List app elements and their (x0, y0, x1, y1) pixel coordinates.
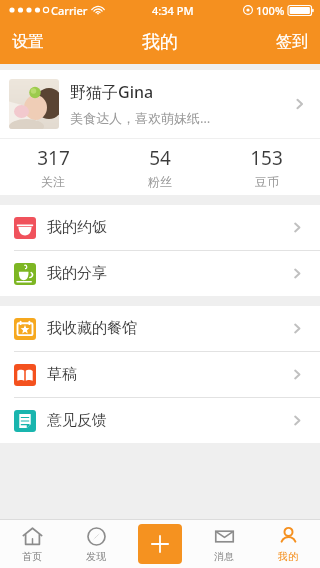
button[interactable]: Add (138, 524, 182, 564)
staticText: 美食达人，喜欢萌妹纸… (70, 109, 211, 127)
staticText: 4:34 PM (152, 3, 194, 18)
button[interactable]: 317 (0, 145, 106, 189)
staticText: 发现 (86, 550, 106, 563)
staticText: 豆币 (255, 174, 279, 189)
button[interactable]: 153 (213, 145, 320, 189)
button[interactable]: 我的 (256, 525, 320, 563)
staticText: 我的分享 (47, 264, 107, 283)
staticText: 草稿 (47, 365, 77, 384)
staticText: 153 (250, 145, 283, 171)
button[interactable]: 野猫子Gina (0, 70, 320, 138)
button[interactable]: 消息 (192, 525, 256, 563)
staticText: 317 (37, 145, 70, 171)
staticText: 关注 (41, 174, 65, 189)
button[interactable]: 我的分享 (0, 251, 320, 296)
staticText: 签到 (276, 32, 308, 52)
staticText: 我的约饭 (47, 218, 107, 237)
button[interactable]: 发现 (64, 525, 128, 563)
staticText: 54 (149, 145, 171, 171)
button[interactable]: 首页 (0, 525, 64, 563)
staticText: 野猫子Gina (70, 81, 154, 103)
staticText: 首页 (22, 550, 42, 563)
staticText: 粉丝 (148, 174, 172, 189)
button[interactable]: 54 (106, 145, 213, 189)
staticText: 100% (256, 3, 285, 18)
button[interactable]: 我的约饭 (0, 205, 320, 250)
staticText: 我的 (278, 550, 298, 563)
button[interactable]: 我收藏的餐馆 (0, 306, 320, 351)
staticText: 设置 (12, 32, 44, 52)
button[interactable]: 意见反馈 (0, 398, 320, 443)
staticText: 消息 (214, 550, 234, 563)
button[interactable]: 签到 (264, 22, 320, 62)
staticText: 意见反馈 (47, 411, 107, 430)
staticText: 我收藏的餐馆 (47, 319, 137, 338)
staticText: Carrier (51, 3, 88, 18)
staticText: 我的 (142, 31, 178, 54)
button[interactable]: 设置 (0, 22, 56, 62)
button[interactable]: 草稿 (0, 352, 320, 397)
